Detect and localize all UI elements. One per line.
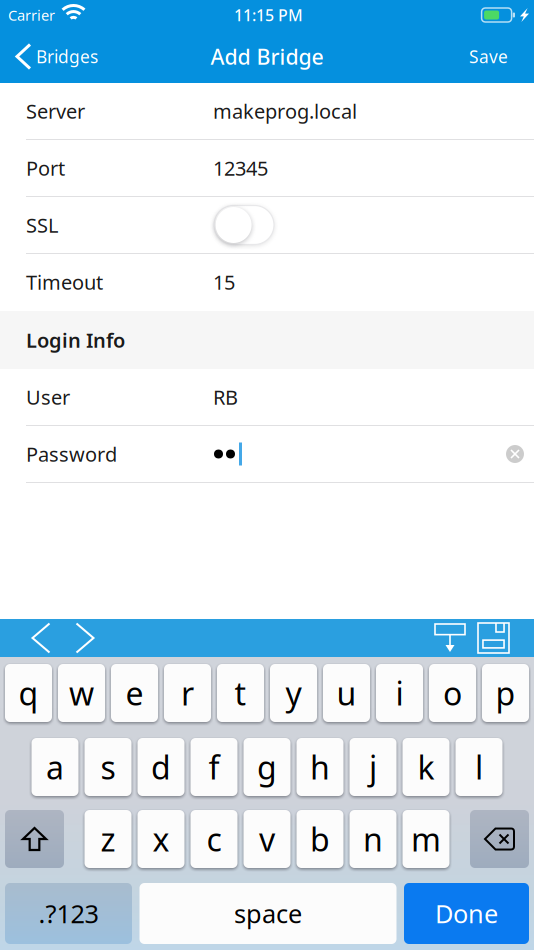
button[interactable]: Previous field: [19, 619, 63, 657]
button[interactable]: Clear text: [498, 431, 532, 477]
staticText: Port: [26, 155, 65, 181]
button[interactable]: Done: [404, 883, 529, 944]
staticText: r: [181, 672, 194, 714]
staticText: SSL: [26, 212, 58, 238]
staticText: Login Info: [26, 327, 125, 353]
staticText: 15: [213, 269, 235, 295]
button[interactable]: i: [376, 664, 423, 722]
button[interactable]: Save: [478, 619, 515, 657]
button[interactable]: s: [84, 738, 131, 796]
button[interactable]: f: [190, 738, 237, 796]
staticText: 12345: [213, 155, 268, 181]
staticText: makeprog.local: [213, 98, 357, 124]
staticText: w: [69, 672, 94, 714]
staticText: Save: [469, 45, 508, 68]
button[interactable]: a: [31, 738, 78, 796]
staticText: RB: [213, 384, 238, 410]
staticText: h: [310, 746, 330, 788]
staticText: m: [411, 818, 441, 860]
staticText: Done: [435, 897, 498, 930]
button[interactable]: p: [482, 664, 529, 722]
button[interactable]: d: [137, 738, 184, 796]
staticText: v: [259, 818, 275, 860]
staticText: q: [18, 672, 38, 714]
button[interactable]: Delete: [470, 810, 529, 868]
staticText: j: [369, 746, 377, 788]
staticText: a: [46, 746, 64, 788]
button[interactable]: b: [296, 810, 343, 868]
button[interactable]: j: [349, 738, 396, 796]
staticText: p: [495, 672, 515, 714]
button[interactable]: l: [455, 738, 502, 796]
staticText: 11:15 PM: [234, 4, 303, 26]
staticText: t: [234, 672, 246, 714]
staticText: y: [285, 672, 301, 714]
staticText: Timeout: [26, 269, 103, 295]
button[interactable]: Next field: [63, 619, 107, 657]
staticText: Add Bridge: [210, 42, 323, 71]
button[interactable]: .?123: [5, 883, 132, 944]
button[interactable]: n: [349, 810, 396, 868]
button[interactable]: Hide keyboard: [430, 619, 478, 657]
staticText: c: [206, 818, 221, 860]
button[interactable]: Shift: [5, 810, 64, 868]
staticText: Carrier: [8, 5, 55, 25]
button[interactable]: m: [402, 810, 449, 868]
staticText: k: [417, 746, 434, 788]
staticText: d: [151, 746, 171, 788]
staticText: z: [100, 818, 115, 860]
staticText: x: [152, 818, 169, 860]
staticText: i: [395, 672, 403, 714]
button[interactable]: x: [137, 810, 184, 868]
staticText: Bridges: [36, 45, 98, 68]
staticText: .?123: [38, 897, 98, 930]
button[interactable]: g: [243, 738, 290, 796]
staticText: e: [125, 672, 143, 714]
button[interactable]: u: [323, 664, 370, 722]
staticText: f: [208, 746, 219, 788]
button[interactable]: t: [217, 664, 264, 722]
staticText: s: [100, 746, 115, 788]
staticText: b: [310, 818, 330, 860]
button[interactable]: z: [84, 810, 131, 868]
button[interactable]: space: [139, 883, 396, 944]
button[interactable]: e: [111, 664, 158, 722]
button[interactable]: Save: [455, 30, 534, 83]
button[interactable]: r: [164, 664, 211, 722]
button[interactable]: w: [58, 664, 105, 722]
staticText: space: [234, 897, 302, 930]
staticText: Password: [26, 441, 117, 467]
button[interactable]: q: [5, 664, 52, 722]
button[interactable]: h: [296, 738, 343, 796]
button[interactable]: SSL: [214, 205, 274, 244]
button[interactable]: y: [270, 664, 317, 722]
staticText: u: [336, 672, 356, 714]
button[interactable]: v: [243, 810, 290, 868]
staticText: g: [257, 746, 277, 788]
staticText: User: [26, 384, 70, 410]
staticText: Server: [26, 98, 85, 124]
staticText: n: [363, 818, 383, 860]
staticText: l: [475, 746, 483, 788]
button[interactable]: Bridges: [0, 30, 108, 83]
staticText: o: [443, 672, 462, 714]
button[interactable]: k: [402, 738, 449, 796]
button[interactable]: o: [429, 664, 476, 722]
button[interactable]: c: [190, 810, 237, 868]
